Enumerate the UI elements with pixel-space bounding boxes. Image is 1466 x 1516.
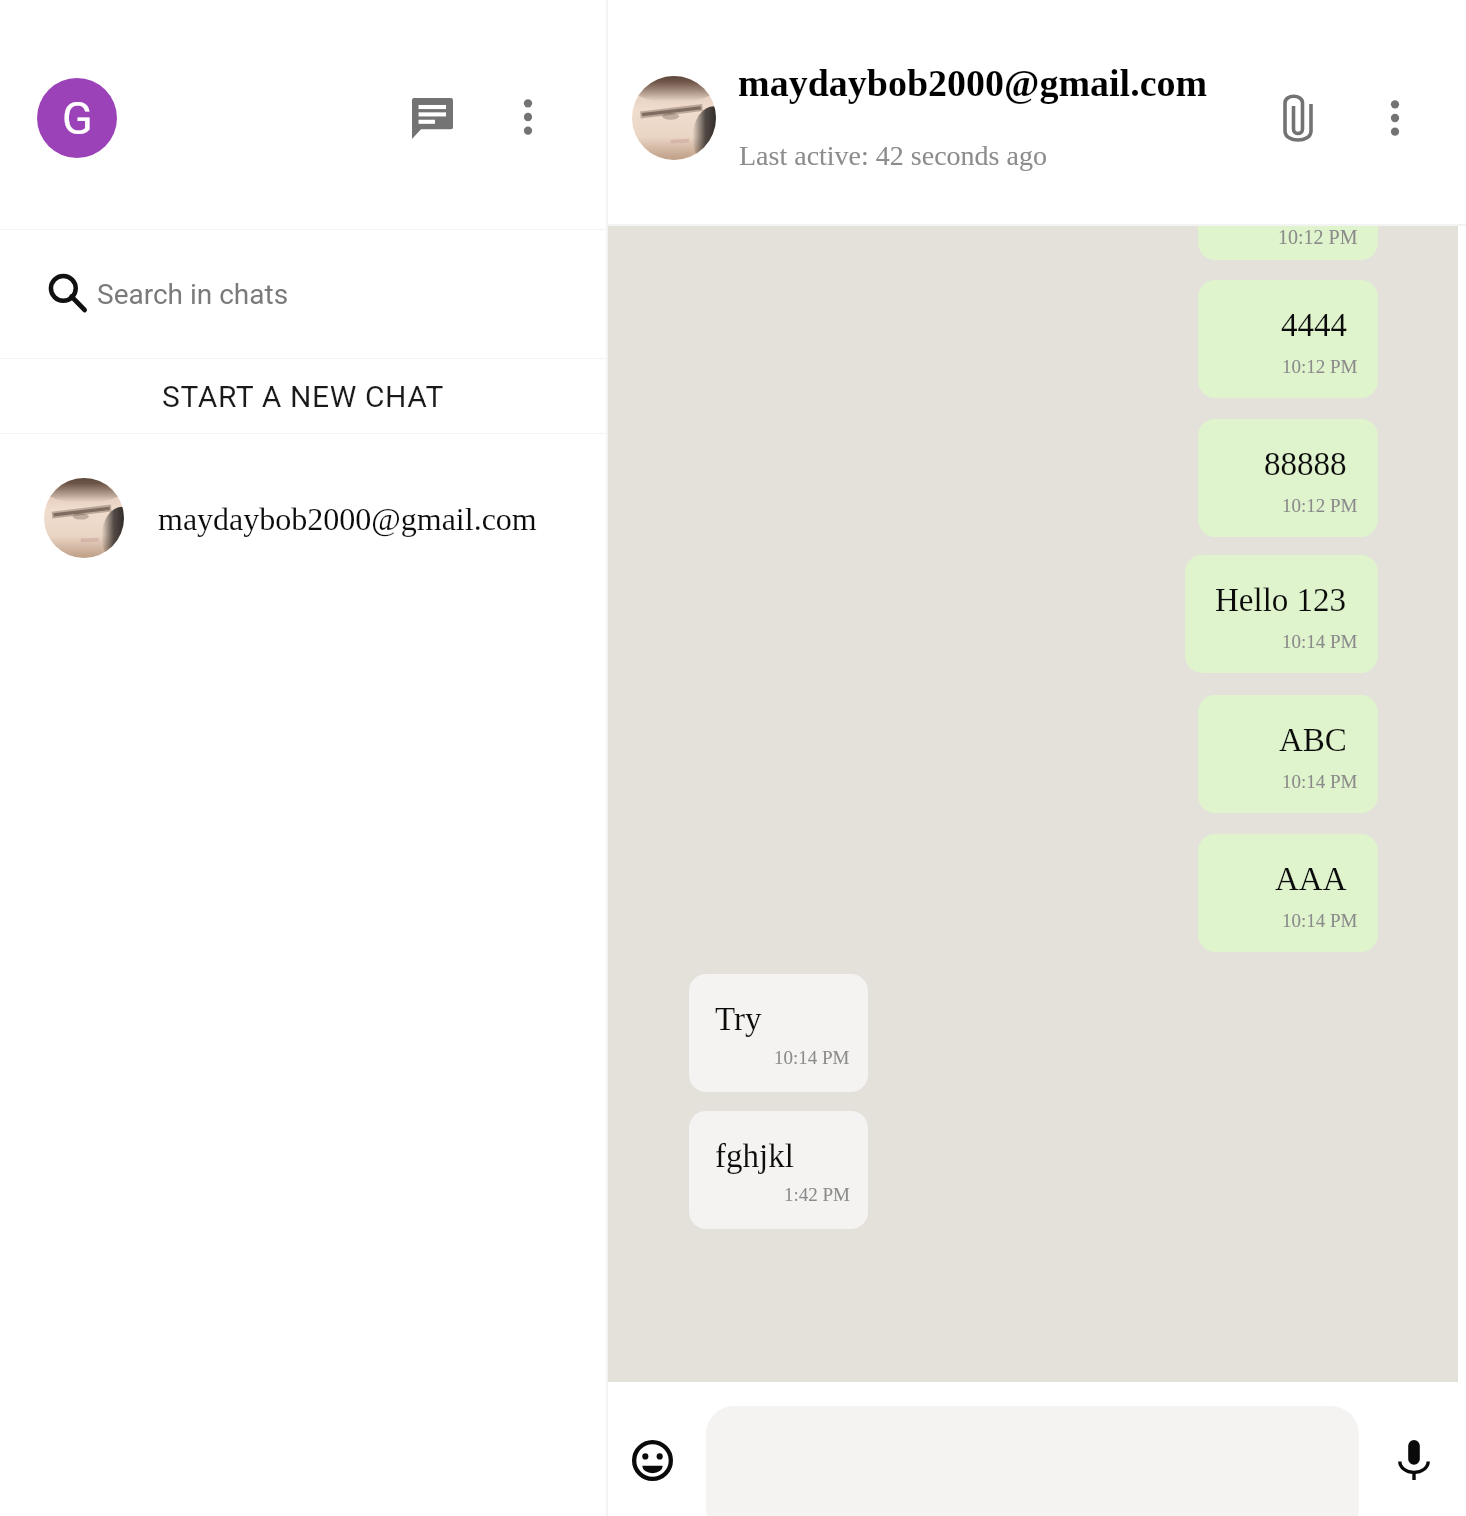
button[interactable]: fghjkl xyxy=(689,1111,868,1229)
staticText: 10:14 PM xyxy=(774,1047,850,1068)
staticText: 4444 xyxy=(1281,307,1347,344)
staticText: Search in chats xyxy=(97,278,289,311)
staticText: G xyxy=(62,92,93,145)
staticText: Try xyxy=(715,1001,762,1038)
button[interactable]: START A NEW CHAT xyxy=(6,359,600,433)
button[interactable]: Hello 123 xyxy=(1185,555,1378,673)
staticText: Last active: 42 seconds ago xyxy=(739,140,1047,171)
staticText: 10:14 PM xyxy=(1282,771,1358,792)
button[interactable]: Voice message xyxy=(1374,1420,1454,1500)
staticText: 10:12 PM xyxy=(1278,226,1358,248)
button[interactable]: More options xyxy=(1355,78,1435,158)
button[interactable]: AAA xyxy=(1198,834,1378,952)
staticText: 10:12 PM xyxy=(1282,495,1358,516)
button[interactable]: Emoji xyxy=(612,1420,692,1500)
button[interactable]: 4444 xyxy=(1198,280,1378,398)
staticText: maydaybob2000@gmail.com xyxy=(738,62,1208,104)
button[interactable]: More options xyxy=(488,77,568,157)
staticText: 10:12 PM xyxy=(1282,356,1358,377)
staticText: fghjkl xyxy=(715,1138,794,1175)
staticText: ABC xyxy=(1279,722,1347,759)
button[interactable]: 88888 xyxy=(1198,419,1378,537)
button[interactable]: New chat xyxy=(392,78,472,158)
staticText: Hello 123 xyxy=(1215,582,1347,619)
button[interactable]: G xyxy=(37,78,117,158)
button[interactable]: maydaybob2000@gmail.com xyxy=(0,434,606,602)
staticText: 10:14 PM xyxy=(1282,631,1358,652)
staticText: maydaybob2000@gmail.com xyxy=(158,501,537,536)
staticText: AAA xyxy=(1275,861,1347,898)
staticText: 1:42 PM xyxy=(784,1184,850,1205)
button[interactable]: Try xyxy=(689,974,868,1092)
button[interactable]: ABC xyxy=(1198,695,1378,813)
button[interactable]: Search in chats xyxy=(0,230,606,358)
staticText: 10:14 PM xyxy=(1282,910,1358,931)
button[interactable]: Attach xyxy=(1260,78,1340,158)
staticText: START A NEW CHAT xyxy=(162,379,445,414)
staticText: 88888 xyxy=(1264,446,1347,483)
